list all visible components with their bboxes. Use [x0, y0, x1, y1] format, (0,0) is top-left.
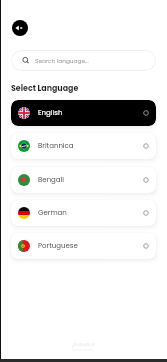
button[interactable]: German: [11, 200, 156, 226]
button[interactable]: Back: [12, 20, 28, 36]
staticText: Search language...: [35, 57, 89, 65]
staticText: English: [38, 108, 63, 118]
staticText: Portuguese: [38, 241, 78, 251]
staticText: مصمم: [72, 339, 95, 348]
button[interactable]: Britannica: [11, 133, 156, 159]
staticText: Select Language: [11, 83, 79, 94]
button[interactable]: Portuguese: [11, 233, 156, 259]
staticText: German: [38, 208, 67, 218]
button[interactable]: Search language...: [11, 50, 156, 71]
button[interactable]: Bengali: [11, 167, 156, 193]
button[interactable]: English: [11, 100, 156, 126]
staticText: Britannica: [38, 141, 74, 151]
staticText: Bengali: [38, 175, 65, 185]
